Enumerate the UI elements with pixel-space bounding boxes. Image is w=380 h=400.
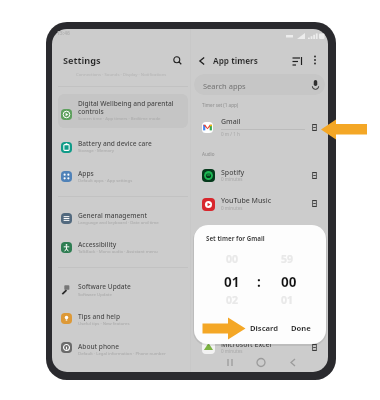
button[interactable] (194, 222, 325, 248)
staticText: General management (78, 211, 147, 220)
button[interactable] (194, 279, 325, 305)
button[interactable]: More options (310, 55, 320, 65)
button[interactable] (58, 236, 188, 262)
button[interactable]: Edit timer (312, 344, 317, 351)
staticText: Useful tips · New features (78, 320, 130, 326)
button[interactable]: Edit timer (312, 172, 317, 179)
staticText: 0 minutes (221, 262, 243, 268)
staticText: controls (78, 107, 104, 116)
staticText: Maps (221, 253, 240, 263)
staticText: 0 minutes (221, 233, 243, 239)
staticText: Timer set (1 app) (202, 102, 239, 108)
staticText: 0 m / 1 h (221, 131, 240, 137)
button[interactable] (194, 193, 325, 219)
button[interactable] (58, 165, 188, 191)
staticText: 59 (281, 252, 294, 266)
staticText: TalkBack · Mono audio · Assistant menu (78, 248, 158, 254)
staticText: Search apps (203, 81, 246, 91)
staticText: 02 (226, 293, 239, 307)
button[interactable] (58, 338, 188, 364)
staticText: Done (291, 323, 311, 333)
staticText: Discard (250, 323, 279, 333)
staticText: Software Update (78, 282, 131, 291)
staticText: 01 (281, 293, 294, 307)
staticText: Software Update (78, 291, 112, 297)
staticText: Apps (78, 169, 94, 178)
button[interactable]: Edit timer (312, 124, 317, 131)
staticText: YouTube Music (221, 196, 272, 206)
staticText: 00 (226, 252, 239, 266)
staticText: Tips and help (78, 312, 120, 321)
staticText: Spotify (221, 168, 245, 178)
button[interactable]: Sort (292, 56, 303, 67)
staticText: Photos (221, 282, 245, 292)
staticText: Digital Wellbeing and parental (78, 99, 174, 108)
staticText: Settings (63, 54, 101, 67)
staticText: 0 minutes (221, 319, 243, 325)
staticText: 01 (224, 273, 240, 291)
staticText: 0 minutes (221, 176, 243, 182)
staticText: Screen time · App timers · Bedtime mode (78, 115, 161, 121)
staticText: Gmail (221, 117, 241, 127)
button[interactable] (194, 113, 325, 139)
staticText: Default apps · App settings (78, 177, 133, 183)
staticText: Audio (202, 151, 215, 157)
staticText: Accessibility (78, 240, 117, 249)
staticText: : (257, 273, 261, 291)
staticText: Connections · Sounds · Display · Notific… (76, 71, 167, 77)
button[interactable] (58, 308, 188, 334)
button[interactable]: Edit timer (312, 200, 317, 207)
staticText: Language and keyboard · Date and time (78, 219, 159, 225)
button[interactable] (194, 337, 325, 363)
staticText: Set timer for Gmail (206, 234, 265, 242)
staticText: 0 minutes (221, 348, 243, 354)
staticText: 00 (281, 273, 297, 291)
staticText: Battery and device care (78, 139, 152, 148)
staticText: Storage · Memory (78, 147, 114, 153)
button[interactable] (58, 94, 188, 128)
button[interactable] (58, 207, 188, 233)
staticText: Chrome (221, 310, 248, 320)
button[interactable] (58, 135, 188, 161)
button[interactable] (194, 74, 325, 95)
button[interactable] (246, 320, 282, 337)
staticText: Default · Legal information · Phone numb… (78, 350, 166, 356)
button[interactable] (194, 307, 325, 333)
button[interactable]: Back (196, 55, 208, 67)
staticText: Microsoft Excel (221, 340, 272, 350)
button[interactable] (194, 250, 325, 276)
staticText: 0 minutes (221, 205, 243, 211)
button[interactable] (287, 320, 315, 337)
button[interactable] (58, 278, 188, 304)
staticText: About phone (78, 342, 119, 351)
button[interactable] (194, 165, 325, 191)
button[interactable]: Search settings (173, 56, 182, 65)
staticText: 13:46 (57, 30, 70, 37)
staticText: App timers (213, 55, 258, 66)
